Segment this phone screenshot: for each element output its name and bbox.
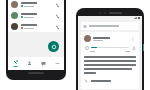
button[interactable]: Call Memory Singh xyxy=(53,12,61,20)
button[interactable] xyxy=(84,78,136,84)
button[interactable]: Call Jackie Wong xyxy=(53,23,61,31)
button[interactable]: Play xyxy=(84,45,89,50)
button[interactable]: Contacts xyxy=(22,57,36,70)
button[interactable]: Call Tom Dean xyxy=(8,0,64,10)
button[interactable] xyxy=(81,22,139,30)
button[interactable]: Voicemail xyxy=(36,57,50,70)
button[interactable]: Call Tom Dean xyxy=(53,1,61,9)
button[interactable]: Call Memory Singh xyxy=(8,10,64,21)
button[interactable]: More xyxy=(50,57,64,70)
button[interactable]: Calls xyxy=(8,57,22,70)
button[interactable]: Call Jackie Wong xyxy=(8,21,64,32)
button[interactable]: New call xyxy=(48,41,59,52)
button[interactable]: More options xyxy=(130,36,136,42)
button[interactable]: Download xyxy=(131,45,136,50)
button[interactable]: More options xyxy=(81,32,139,89)
